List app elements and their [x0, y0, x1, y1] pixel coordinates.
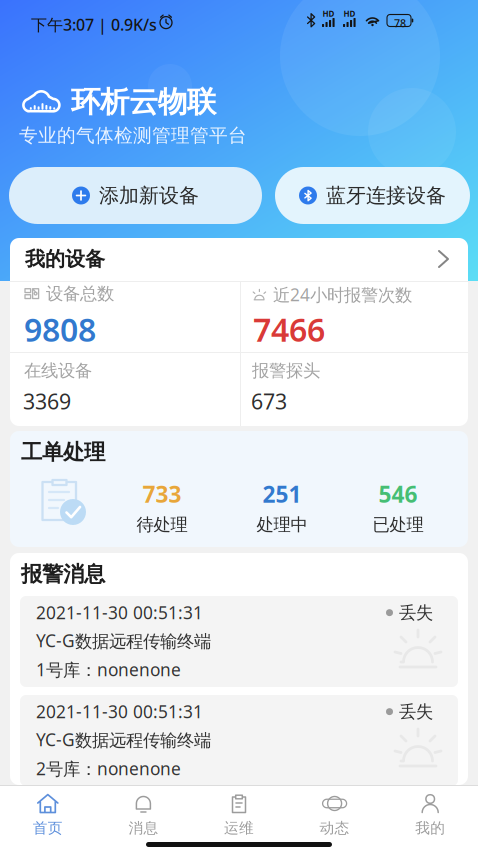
staticText: 我的设备 [25, 247, 105, 271]
button[interactable]: 首页 [0, 791, 96, 839]
button[interactable]: 我的设备 [10, 238, 468, 280]
staticText: 我的 [415, 819, 445, 837]
staticText: 环析云物联 [71, 84, 216, 120]
staticText: 消息 [128, 819, 158, 837]
button[interactable]: 我的 [382, 791, 478, 839]
staticText: 蓝牙连接设备 [326, 183, 446, 208]
staticText: 2021-11-30 00:51:31 [36, 700, 203, 723]
staticText: 动态 [320, 819, 350, 837]
staticText: YC-G数据远程传输终端 [36, 629, 211, 652]
staticText: 9808 [24, 308, 96, 350]
staticText: 下午3:07 | 0.9K/s [31, 14, 157, 35]
staticText: 待处理 [136, 514, 187, 535]
staticText: 报警消息 [21, 561, 105, 587]
staticText: 已处理 [372, 514, 423, 535]
staticText: 2号库：nonenone [36, 757, 181, 780]
button[interactable]: 运维 [191, 791, 287, 839]
staticText: 673 [251, 387, 287, 415]
staticText: 报警探头 [252, 360, 320, 381]
button[interactable]: 动态 [287, 791, 382, 839]
staticText: 7466 [253, 308, 325, 350]
staticText: 3369 [23, 387, 71, 415]
button[interactable]: 添加新设备 [9, 167, 262, 224]
staticText: 78 [394, 16, 406, 30]
staticText: 733 [142, 479, 181, 509]
staticText: 丢失 [399, 602, 433, 623]
staticText: HD [322, 8, 334, 19]
staticText: 2021-11-30 00:51:31 [36, 601, 203, 624]
staticText: 近24小时报警次数 [273, 283, 412, 306]
staticText: 546 [378, 479, 417, 509]
button[interactable]: 蓝牙连接设备 [275, 167, 470, 224]
staticText: 处理中 [256, 514, 307, 535]
button[interactable]: 2021-11-30 00:51:31 [20, 596, 458, 687]
staticText: 在线设备 [24, 360, 92, 381]
staticText: 设备总数 [46, 283, 114, 304]
staticText: 添加新设备 [99, 183, 199, 208]
button[interactable]: 2021-11-30 00:51:31 [20, 695, 458, 786]
staticText: 专业的气体检测管理管平台 [19, 124, 247, 147]
staticText: 1号库：nonenone [36, 658, 181, 681]
staticText: 运维 [224, 819, 254, 837]
button[interactable]: 251 [242, 479, 322, 529]
button[interactable]: 546 [358, 479, 438, 529]
staticText: 251 [262, 479, 301, 509]
button[interactable]: 消息 [96, 791, 191, 839]
staticText: 工单处理 [21, 439, 105, 465]
staticText: 首页 [33, 819, 63, 837]
button[interactable]: 733 [122, 479, 202, 529]
staticText: YC-G数据远程传输终端 [36, 728, 211, 751]
staticText: HD [343, 8, 355, 19]
staticText: 丢失 [399, 701, 433, 722]
